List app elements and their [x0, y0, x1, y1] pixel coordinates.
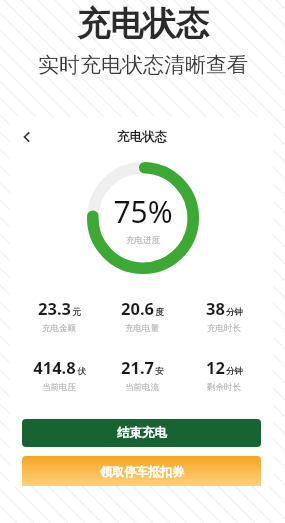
- staticText: 414.8: [33, 356, 76, 378]
- staticText: 12: [206, 356, 225, 378]
- staticText: 结束充电: [117, 425, 167, 441]
- staticText: 充电进度: [126, 235, 160, 246]
- staticText: 23.3: [38, 297, 71, 319]
- staticText: 充电电量: [125, 323, 159, 334]
- button[interactable]: 领取停车抵扣券: [22, 456, 261, 486]
- staticText: 领取停车抵扣券: [100, 464, 184, 479]
- staticText: 实时充电状态清晰查看: [38, 52, 248, 78]
- staticText: 当前电压: [42, 382, 76, 393]
- staticText: 充电时长: [207, 323, 241, 334]
- staticText: 安: [155, 366, 164, 377]
- staticText: 充电状态: [117, 129, 167, 145]
- staticText: 剩余时长: [207, 382, 241, 393]
- staticText: 分钟: [226, 366, 243, 377]
- button[interactable]: 结束充电: [22, 419, 261, 447]
- staticText: 21.7: [121, 356, 154, 378]
- staticText: 元: [72, 307, 81, 318]
- button[interactable]: Back: [10, 120, 44, 154]
- staticText: 充电金额: [42, 323, 76, 334]
- staticText: 度: [155, 307, 164, 318]
- staticText: 充电状态: [77, 3, 209, 45]
- staticText: 20.6: [121, 297, 154, 319]
- staticText: 38: [206, 297, 225, 319]
- staticText: 伏: [77, 366, 86, 377]
- staticText: 分钟: [226, 307, 243, 318]
- staticText: 75%: [113, 191, 173, 232]
- staticText: 当前电流: [125, 382, 159, 393]
